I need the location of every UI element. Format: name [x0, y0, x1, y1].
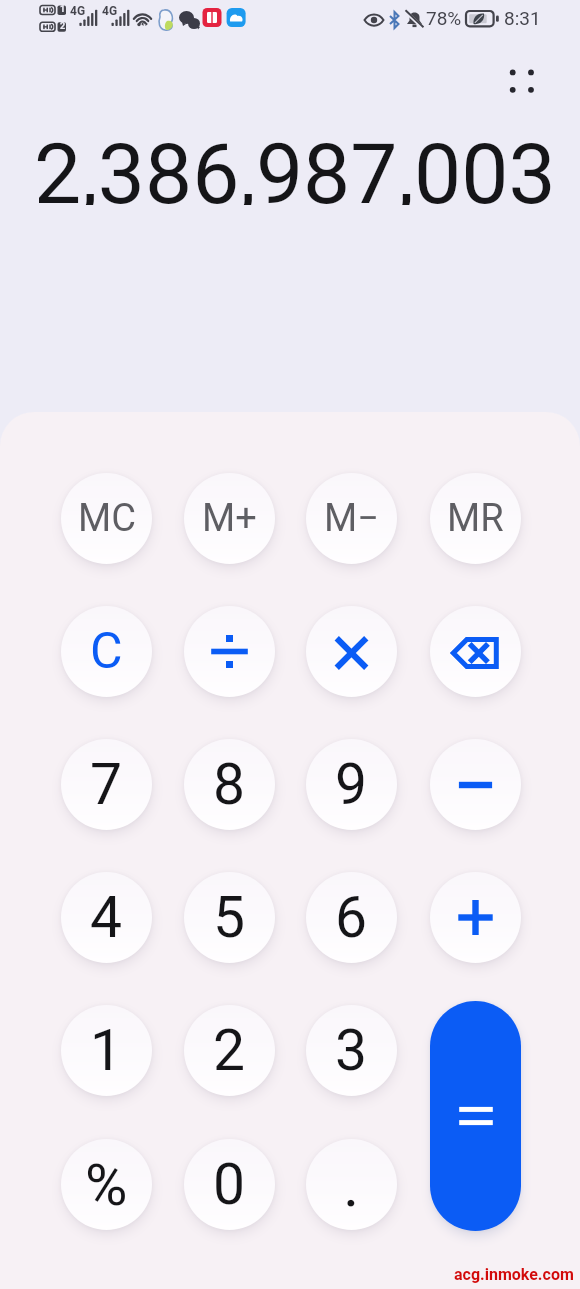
staticText: 4 [90, 884, 123, 951]
button[interactable]: More options [494, 54, 549, 109]
staticText: acg.inmoke.com [454, 1265, 574, 1284]
button[interactable]: 9 [306, 739, 397, 830]
button[interactable]: M+ [184, 473, 275, 564]
staticText: 7 [90, 751, 123, 818]
button[interactable]: Plus [430, 872, 521, 963]
button[interactable]: C [61, 606, 152, 697]
staticText: 8:31 [504, 7, 541, 29]
button[interactable]: 5 [184, 872, 275, 963]
staticText: 4G [102, 4, 118, 18]
staticText: 3 [335, 1017, 368, 1084]
staticText: C [90, 622, 123, 681]
button[interactable]: Multiply [306, 606, 397, 697]
staticText: 2 [60, 21, 66, 32]
staticText: 2,386,987,003 [34, 125, 556, 205]
staticText: 1 [60, 4, 66, 15]
button[interactable]: M− [306, 473, 397, 564]
button[interactable]: 8 [184, 739, 275, 830]
button[interactable]: 0 [184, 1139, 275, 1230]
button[interactable]: . [306, 1139, 397, 1230]
staticText: 6 [335, 884, 368, 951]
button[interactable]: 3 [306, 1005, 397, 1096]
staticText: % [85, 1151, 128, 1219]
button[interactable]: 7 [61, 739, 152, 830]
button[interactable]: Backspace [430, 606, 521, 697]
staticText: M+ [202, 496, 257, 541]
button[interactable]: MC [61, 473, 152, 564]
staticText: 0 [213, 1151, 246, 1218]
button[interactable]: MR [430, 473, 521, 564]
staticText: M− [324, 496, 379, 541]
button[interactable]: Equals [430, 1001, 521, 1231]
button[interactable]: 4 [61, 872, 152, 963]
staticText: 78% [426, 7, 462, 29]
staticText: MC [78, 496, 136, 541]
staticText: 1 [90, 1017, 123, 1084]
staticText: 9 [335, 751, 368, 818]
button[interactable]: % [61, 1139, 152, 1230]
button[interactable]: Minus [430, 739, 521, 830]
staticText: . [343, 1148, 360, 1221]
button[interactable]: 6 [306, 872, 397, 963]
staticText: MR [447, 496, 504, 541]
button[interactable]: 2 [184, 1005, 275, 1096]
staticText: 4G [70, 4, 86, 18]
staticText: 2 [213, 1017, 246, 1084]
staticText: 8 [213, 751, 246, 818]
button[interactable]: 1 [61, 1005, 152, 1096]
button[interactable]: Divide [184, 606, 275, 697]
staticText: 5 [213, 884, 246, 951]
